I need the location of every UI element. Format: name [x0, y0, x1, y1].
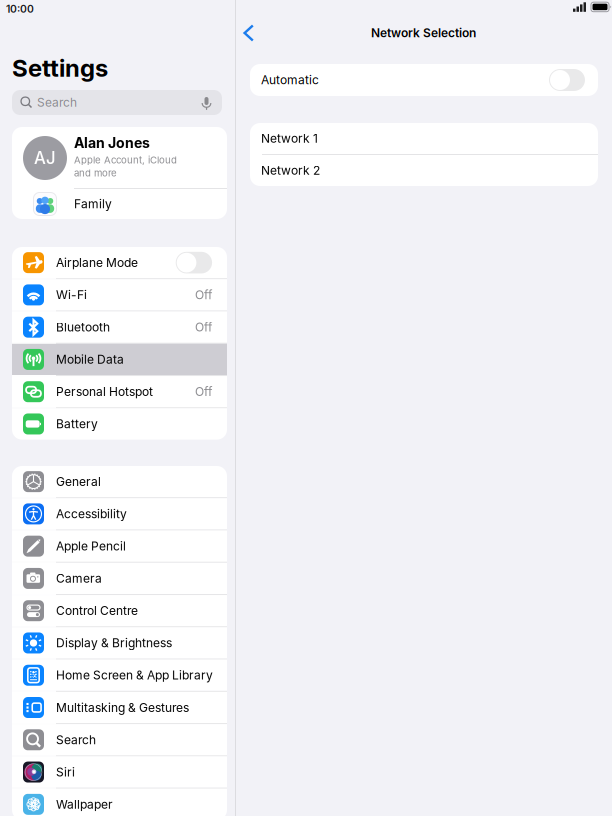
staticText: Network 2	[261, 163, 320, 178]
button[interactable]: Battery	[12, 408, 227, 440]
staticText: Wallpaper	[56, 797, 113, 812]
button[interactable]: Personal Hotspot	[12, 376, 227, 407]
button[interactable]: AJ	[12, 127, 227, 188]
staticText: 10:00	[6, 3, 34, 15]
button[interactable]: Camera	[12, 563, 227, 594]
staticText: Family	[74, 197, 112, 211]
button[interactable]: Display & Brightness	[12, 627, 227, 659]
button[interactable]: Bluetooth	[12, 311, 227, 343]
button[interactable]: Airplane Mode	[12, 247, 227, 278]
staticText: Search	[56, 732, 96, 747]
button[interactable]: Mobile Data	[12, 344, 227, 375]
button[interactable]: Search	[12, 724, 227, 755]
button[interactable]: Automatic	[250, 64, 598, 96]
staticText: AJ	[34, 148, 56, 168]
button[interactable]: Control Centre	[12, 595, 227, 626]
button[interactable]: Family	[12, 189, 227, 219]
staticText: Multitasking & Gestures	[56, 700, 189, 715]
staticText: Accessibility	[56, 507, 127, 521]
staticText: Personal Hotspot	[56, 384, 153, 399]
staticText: Battery	[56, 417, 98, 431]
staticText: Airplane Mode	[56, 255, 138, 270]
button[interactable]: Accessibility	[12, 498, 227, 530]
button[interactable]: Wallpaper	[12, 789, 227, 816]
staticText: Camera	[56, 571, 102, 586]
staticText: Display & Brightness	[56, 636, 172, 650]
staticText: General	[56, 474, 101, 489]
staticText: Off	[195, 320, 212, 334]
button[interactable]: Network 1	[250, 123, 598, 154]
staticText: Home Screen & App Library	[56, 668, 213, 682]
button[interactable]: Apple Pencil	[12, 530, 227, 562]
staticText: Bluetooth	[56, 320, 110, 334]
staticText: Off	[195, 384, 212, 399]
staticText: Control Centre	[56, 603, 138, 618]
staticText: Alan Jones	[74, 134, 150, 151]
staticText: Search	[37, 95, 77, 110]
button[interactable]: Siri	[12, 756, 227, 788]
staticText: Apple Pencil	[56, 539, 126, 553]
staticText: Apple Account, iCloud	[74, 154, 177, 166]
staticText: and more	[74, 167, 117, 179]
staticText: Wi-Fi	[56, 288, 87, 302]
staticText: Network Selection	[371, 26, 476, 40]
staticText: Automatic	[261, 73, 319, 87]
staticText: Settings	[12, 53, 108, 82]
button[interactable]: General	[12, 466, 227, 497]
staticText: Off	[195, 288, 212, 302]
button[interactable]: Home Screen & App Library	[12, 660, 227, 691]
button[interactable]: Back	[238, 22, 266, 50]
staticText: Mobile Data	[56, 352, 124, 367]
staticText: Network 1	[261, 131, 318, 146]
button[interactable]: Network 2	[250, 155, 598, 186]
button[interactable]: Wi-Fi	[12, 279, 227, 311]
button[interactable]: Multitasking & Gestures	[12, 692, 227, 723]
staticText: Siri	[56, 765, 75, 779]
